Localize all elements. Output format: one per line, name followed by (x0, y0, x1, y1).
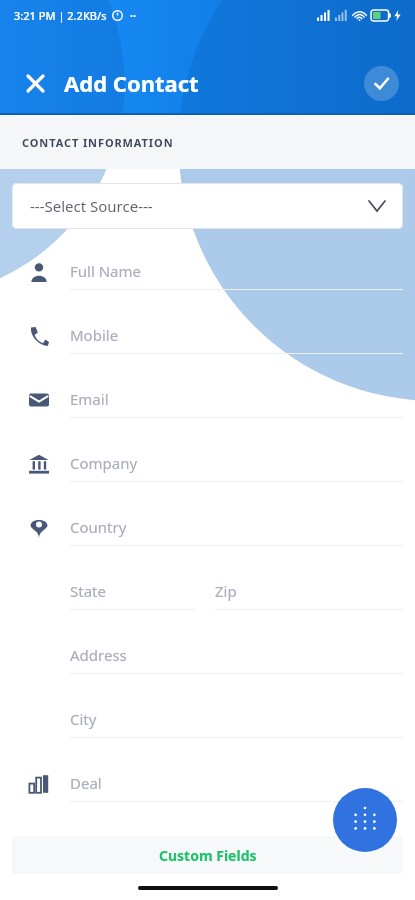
staticText: ·· (130, 8, 137, 23)
staticText: CONTACT INFORMATION (22, 135, 174, 150)
staticText: Company (70, 453, 138, 473)
staticText: City (70, 709, 97, 729)
button[interactable]: Email (0, 373, 415, 437)
staticText: Address (70, 645, 127, 665)
staticText: ---Select Source--- (30, 196, 153, 216)
button[interactable]: Zip (207, 565, 415, 629)
staticText: Email (70, 389, 109, 409)
button[interactable]: Country (0, 501, 415, 565)
button[interactable]: City (0, 693, 415, 757)
button[interactable]: Apps (333, 788, 397, 852)
staticText: Mobile (70, 325, 119, 345)
staticText: Deal (70, 773, 102, 793)
staticText: Zip (215, 581, 237, 601)
button[interactable]: Save (364, 66, 399, 101)
button[interactable]: State (0, 565, 207, 629)
staticText: Country (70, 517, 127, 537)
button[interactable]: Company (0, 437, 415, 501)
button[interactable]: ---Select Source--- (12, 183, 403, 229)
staticText: Add Contact (64, 68, 199, 98)
staticText: Full Name (70, 261, 141, 281)
button[interactable]: Full Name (0, 245, 415, 309)
staticText: Custom Fields (159, 846, 257, 865)
button[interactable]: Custom Fields (12, 836, 403, 874)
button[interactable]: Close (20, 68, 50, 98)
staticText: State (70, 581, 106, 601)
button[interactable]: Mobile (0, 309, 415, 373)
staticText: 3:21 PM | 2.2KB/s (14, 8, 107, 23)
button[interactable]: Deal (0, 757, 415, 821)
button[interactable]: Address (0, 629, 415, 693)
